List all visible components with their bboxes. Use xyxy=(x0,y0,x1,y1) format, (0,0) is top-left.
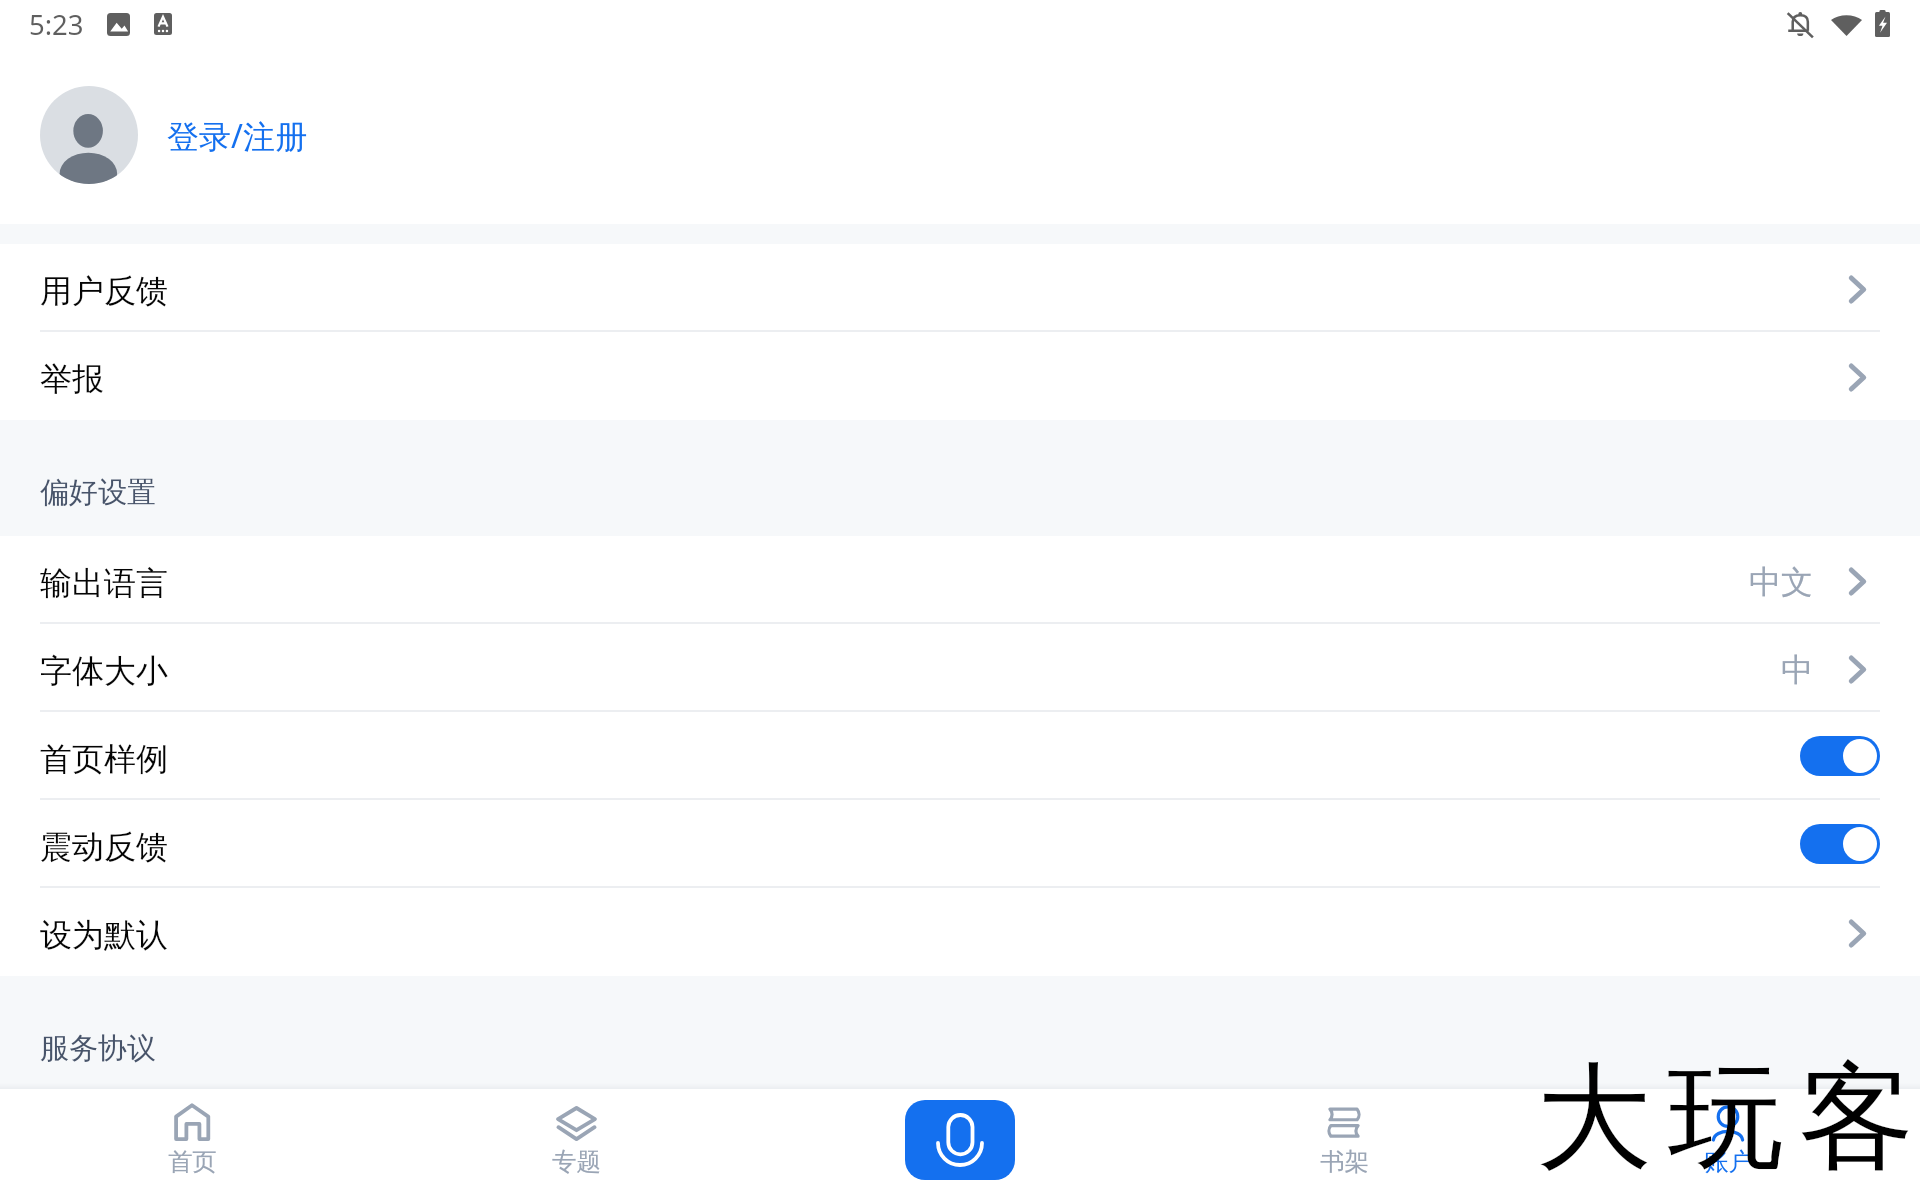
button[interactable]: 用户反馈 xyxy=(0,244,1920,332)
staticText: 中文 xyxy=(1749,562,1813,602)
staticText: 首页 xyxy=(168,1146,217,1177)
button[interactable]: 语音输入 xyxy=(905,1100,1015,1180)
button[interactable]: 震动反馈 xyxy=(0,800,1920,888)
staticText: 用户反馈 xyxy=(40,271,168,311)
staticText: 中 xyxy=(1781,650,1813,690)
staticText: 服务协议 xyxy=(40,1030,156,1067)
staticText: 设为默认 xyxy=(40,915,168,955)
button[interactable]: 专题 xyxy=(384,1089,768,1200)
button[interactable]: 开关 xyxy=(1800,736,1880,776)
staticText: 首页样例 xyxy=(40,739,168,779)
staticText: 字体大小 xyxy=(40,651,168,691)
staticText: 5:23 xyxy=(29,6,84,43)
button[interactable]: 举报 xyxy=(0,332,1920,420)
staticText: 专题 xyxy=(552,1146,601,1177)
staticText: 登录/注册 xyxy=(167,114,307,158)
button[interactable]: 输出语言 xyxy=(0,536,1920,624)
button[interactable]: 账户 xyxy=(1536,1089,1920,1200)
button[interactable]: 书架 xyxy=(1152,1089,1536,1200)
button[interactable]: 字体大小 xyxy=(0,624,1920,712)
staticText: 举报 xyxy=(40,359,104,399)
other: 静音 xyxy=(1786,11,1814,38)
staticText: 震动反馈 xyxy=(40,827,168,867)
button[interactable]: 开关 xyxy=(1800,824,1880,864)
other: 电量 xyxy=(1875,10,1890,37)
button[interactable]: 设为默认 xyxy=(0,888,1920,976)
staticText: 大玩客 xyxy=(1536,1046,1920,1192)
button[interactable]: 首页样例 xyxy=(0,712,1920,800)
button[interactable]: 首页 xyxy=(0,1089,384,1200)
staticText: 输出语言 xyxy=(40,563,168,603)
staticText: 账户 xyxy=(1704,1146,1753,1177)
button[interactable]: 登录/注册 xyxy=(0,50,1920,224)
staticText: 书架 xyxy=(1320,1146,1369,1177)
other: Wi-Fi xyxy=(1831,11,1862,36)
staticText: 偏好设置 xyxy=(40,474,156,511)
